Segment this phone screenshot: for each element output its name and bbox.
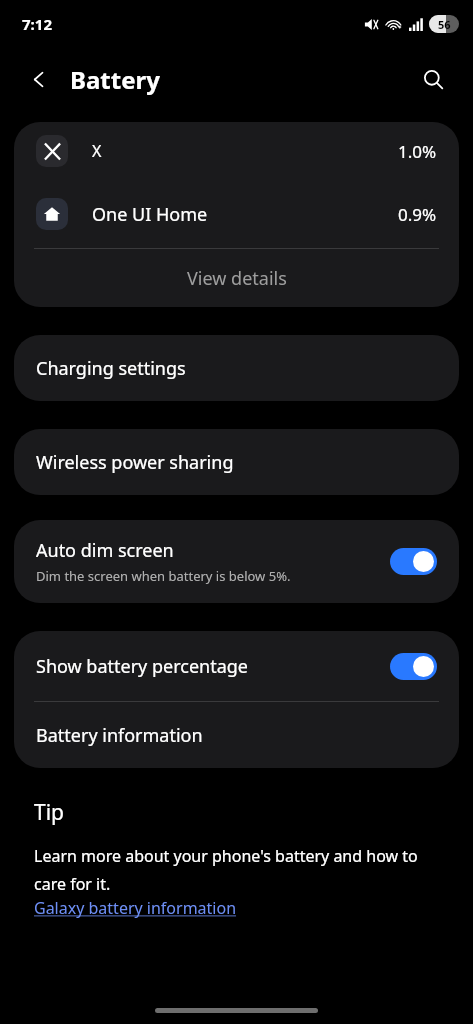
staticText: 7:12: [22, 14, 52, 34]
staticText: 56: [438, 17, 451, 32]
button[interactable]: Toggle: [390, 548, 437, 575]
button[interactable]: Search: [415, 61, 451, 97]
staticText: Battery: [70, 63, 160, 96]
staticText: Auto dim screen: [36, 538, 174, 563]
staticText: Charging settings: [36, 356, 186, 381]
button[interactable]: X: [14, 122, 459, 180]
staticText: Battery information: [36, 723, 203, 748]
staticText: 0.9%: [398, 203, 437, 226]
staticText: X: [92, 140, 102, 162]
button[interactable]: Battery information: [14, 702, 459, 768]
button[interactable]: Galaxy battery information: [34, 897, 237, 919]
button[interactable]: Charging settings: [14, 335, 459, 401]
button[interactable]: View details: [14, 249, 459, 307]
staticText: View details: [187, 266, 287, 291]
staticText: One UI Home: [92, 202, 208, 227]
button[interactable]: Wireless power sharing: [14, 429, 459, 495]
staticText: 1.0%: [398, 140, 437, 163]
button[interactable]: Auto dim screen: [14, 520, 459, 603]
button[interactable]: Toggle: [390, 653, 437, 680]
staticText: Galaxy battery information: [34, 897, 237, 919]
staticText: Wireless power sharing: [36, 450, 234, 475]
button[interactable]: One UI Home: [14, 180, 459, 248]
button[interactable]: Back: [22, 62, 56, 96]
staticText: Dim the screen when battery is below 5%.: [36, 567, 291, 585]
button[interactable]: Show battery percentage: [14, 631, 459, 701]
staticText: Tip: [34, 798, 65, 827]
staticText: Learn more about your phone's battery an…: [34, 845, 439, 895]
staticText: Show battery percentage: [36, 654, 390, 679]
